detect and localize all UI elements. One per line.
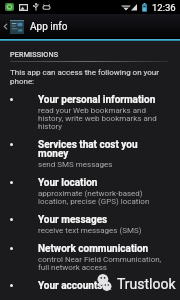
staticText: Trustlook <box>117 276 176 292</box>
staticText: Your personal information <box>38 94 156 106</box>
staticText: 12:36 <box>152 2 176 13</box>
staticText: App info <box>30 21 68 33</box>
staticText: send SMS messages <box>38 160 113 169</box>
button[interactable]: Services that cost you money <box>10 139 174 177</box>
staticText: approximate (network-based) location, pr… <box>38 189 166 206</box>
button[interactable]: Navigate up <box>0 14 180 41</box>
staticText: PERMISSIONS <box>10 50 59 58</box>
button[interactable]: Your messages <box>10 214 174 243</box>
staticText: Your messages <box>38 214 108 226</box>
staticText: This app can access the following on you… <box>10 68 174 86</box>
button[interactable]: Your personal information <box>10 94 174 139</box>
staticText: Your location <box>38 177 98 189</box>
staticText: Your accounts <box>38 280 103 292</box>
staticText: Network communication <box>38 243 149 255</box>
staticText: Services that cost you money <box>38 139 166 160</box>
staticText: receive text messages (SMS) <box>38 226 142 235</box>
staticText: control Near Field Communication, full n… <box>38 255 166 272</box>
other: Navigate up <box>1 22 10 31</box>
button[interactable]: Network communication <box>10 243 174 280</box>
button[interactable]: Your location <box>10 177 174 214</box>
staticText: read your Web bookmarks and history, wri… <box>38 106 166 131</box>
button[interactable]: Your accounts <box>10 280 174 300</box>
